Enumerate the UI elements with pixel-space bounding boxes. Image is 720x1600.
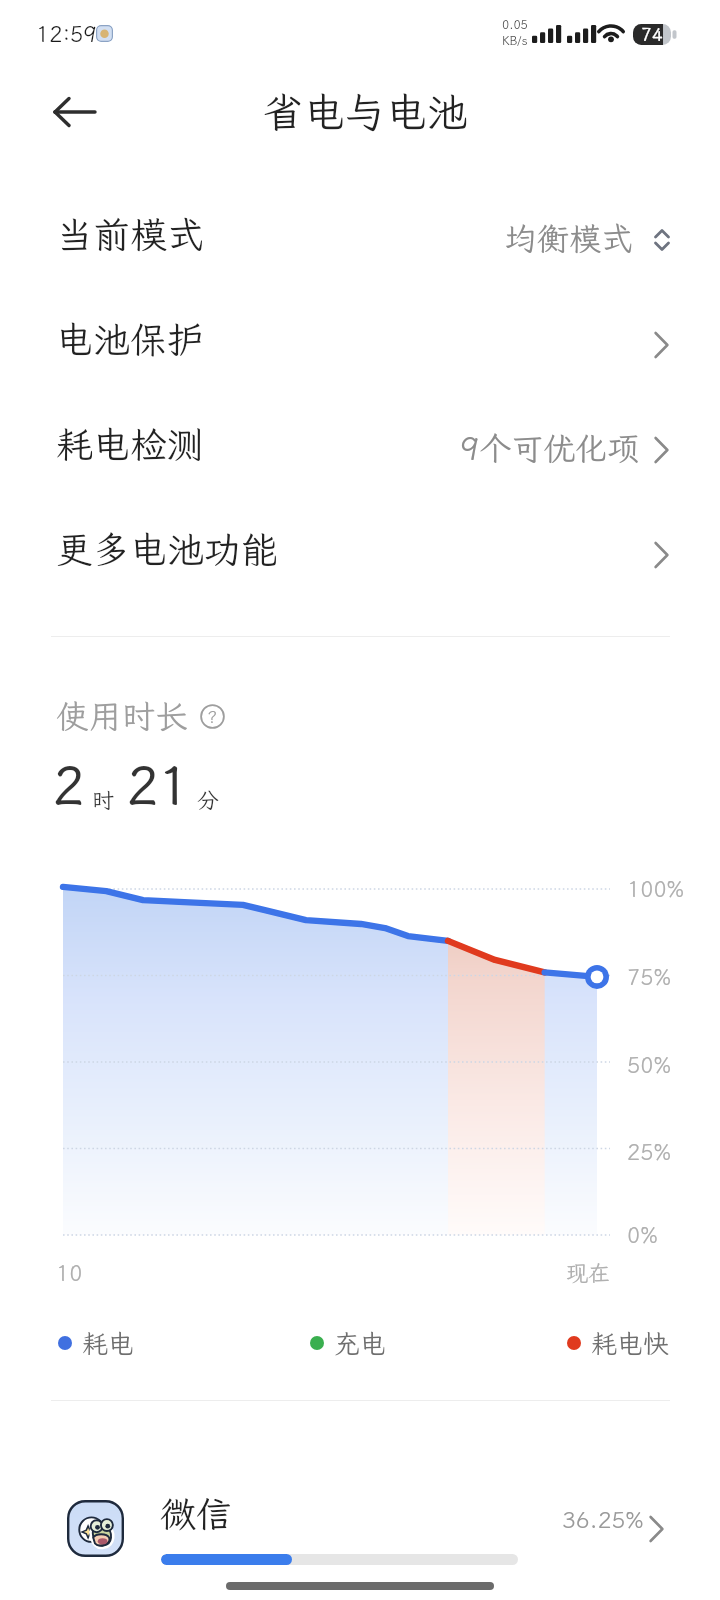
- staticText: ?: [207, 705, 218, 727]
- staticText: 使用时长: [56, 694, 188, 737]
- staticText: 25%: [627, 1137, 672, 1166]
- staticText: 微信: [160, 1490, 233, 1537]
- staticText: 0%: [627, 1220, 658, 1249]
- button[interactable]: 充电: [310, 1324, 387, 1362]
- button[interactable]: 耗电检测: [0, 392, 720, 497]
- button[interactable]: 当前模式: [0, 182, 720, 287]
- staticText: 74: [641, 22, 663, 46]
- staticText: 时: [92, 785, 115, 814]
- staticText: 现在: [566, 1258, 611, 1287]
- staticText: 9个可优化项: [460, 427, 640, 469]
- staticText: 更多电池功能: [56, 525, 278, 574]
- staticText: 均衡模式: [505, 217, 634, 259]
- button[interactable]: 电池保护: [0, 287, 720, 392]
- button[interactable]: Help: [198, 702, 226, 730]
- staticText: 50%: [627, 1050, 672, 1079]
- staticText: 充电: [334, 1326, 387, 1360]
- button[interactable]: 更多电池功能: [0, 497, 720, 602]
- staticText: 耗电检测: [56, 420, 204, 469]
- staticText: 36.25%: [562, 1504, 644, 1534]
- staticText: 10: [56, 1258, 83, 1287]
- staticText: 75%: [627, 962, 672, 991]
- staticText: KB/s: [502, 33, 528, 49]
- staticText: 耗电: [82, 1326, 135, 1360]
- button[interactable]: 耗电快: [567, 1324, 670, 1362]
- staticText: 21: [127, 750, 190, 818]
- staticText: 当前模式: [56, 210, 204, 259]
- staticText: 省电与电池: [263, 85, 468, 139]
- staticText: 12:59: [36, 19, 97, 48]
- staticText: 2: [53, 750, 85, 818]
- button[interactable]: 微信: [0, 1466, 720, 1576]
- staticText: 电池保护: [56, 315, 204, 364]
- button[interactable]: Back: [39, 76, 111, 148]
- staticText: 100%: [627, 874, 685, 903]
- staticText: 分: [197, 785, 220, 814]
- staticText: 0.05: [502, 17, 528, 33]
- button[interactable]: 耗电: [58, 1324, 135, 1362]
- staticText: 耗电快: [591, 1326, 670, 1360]
